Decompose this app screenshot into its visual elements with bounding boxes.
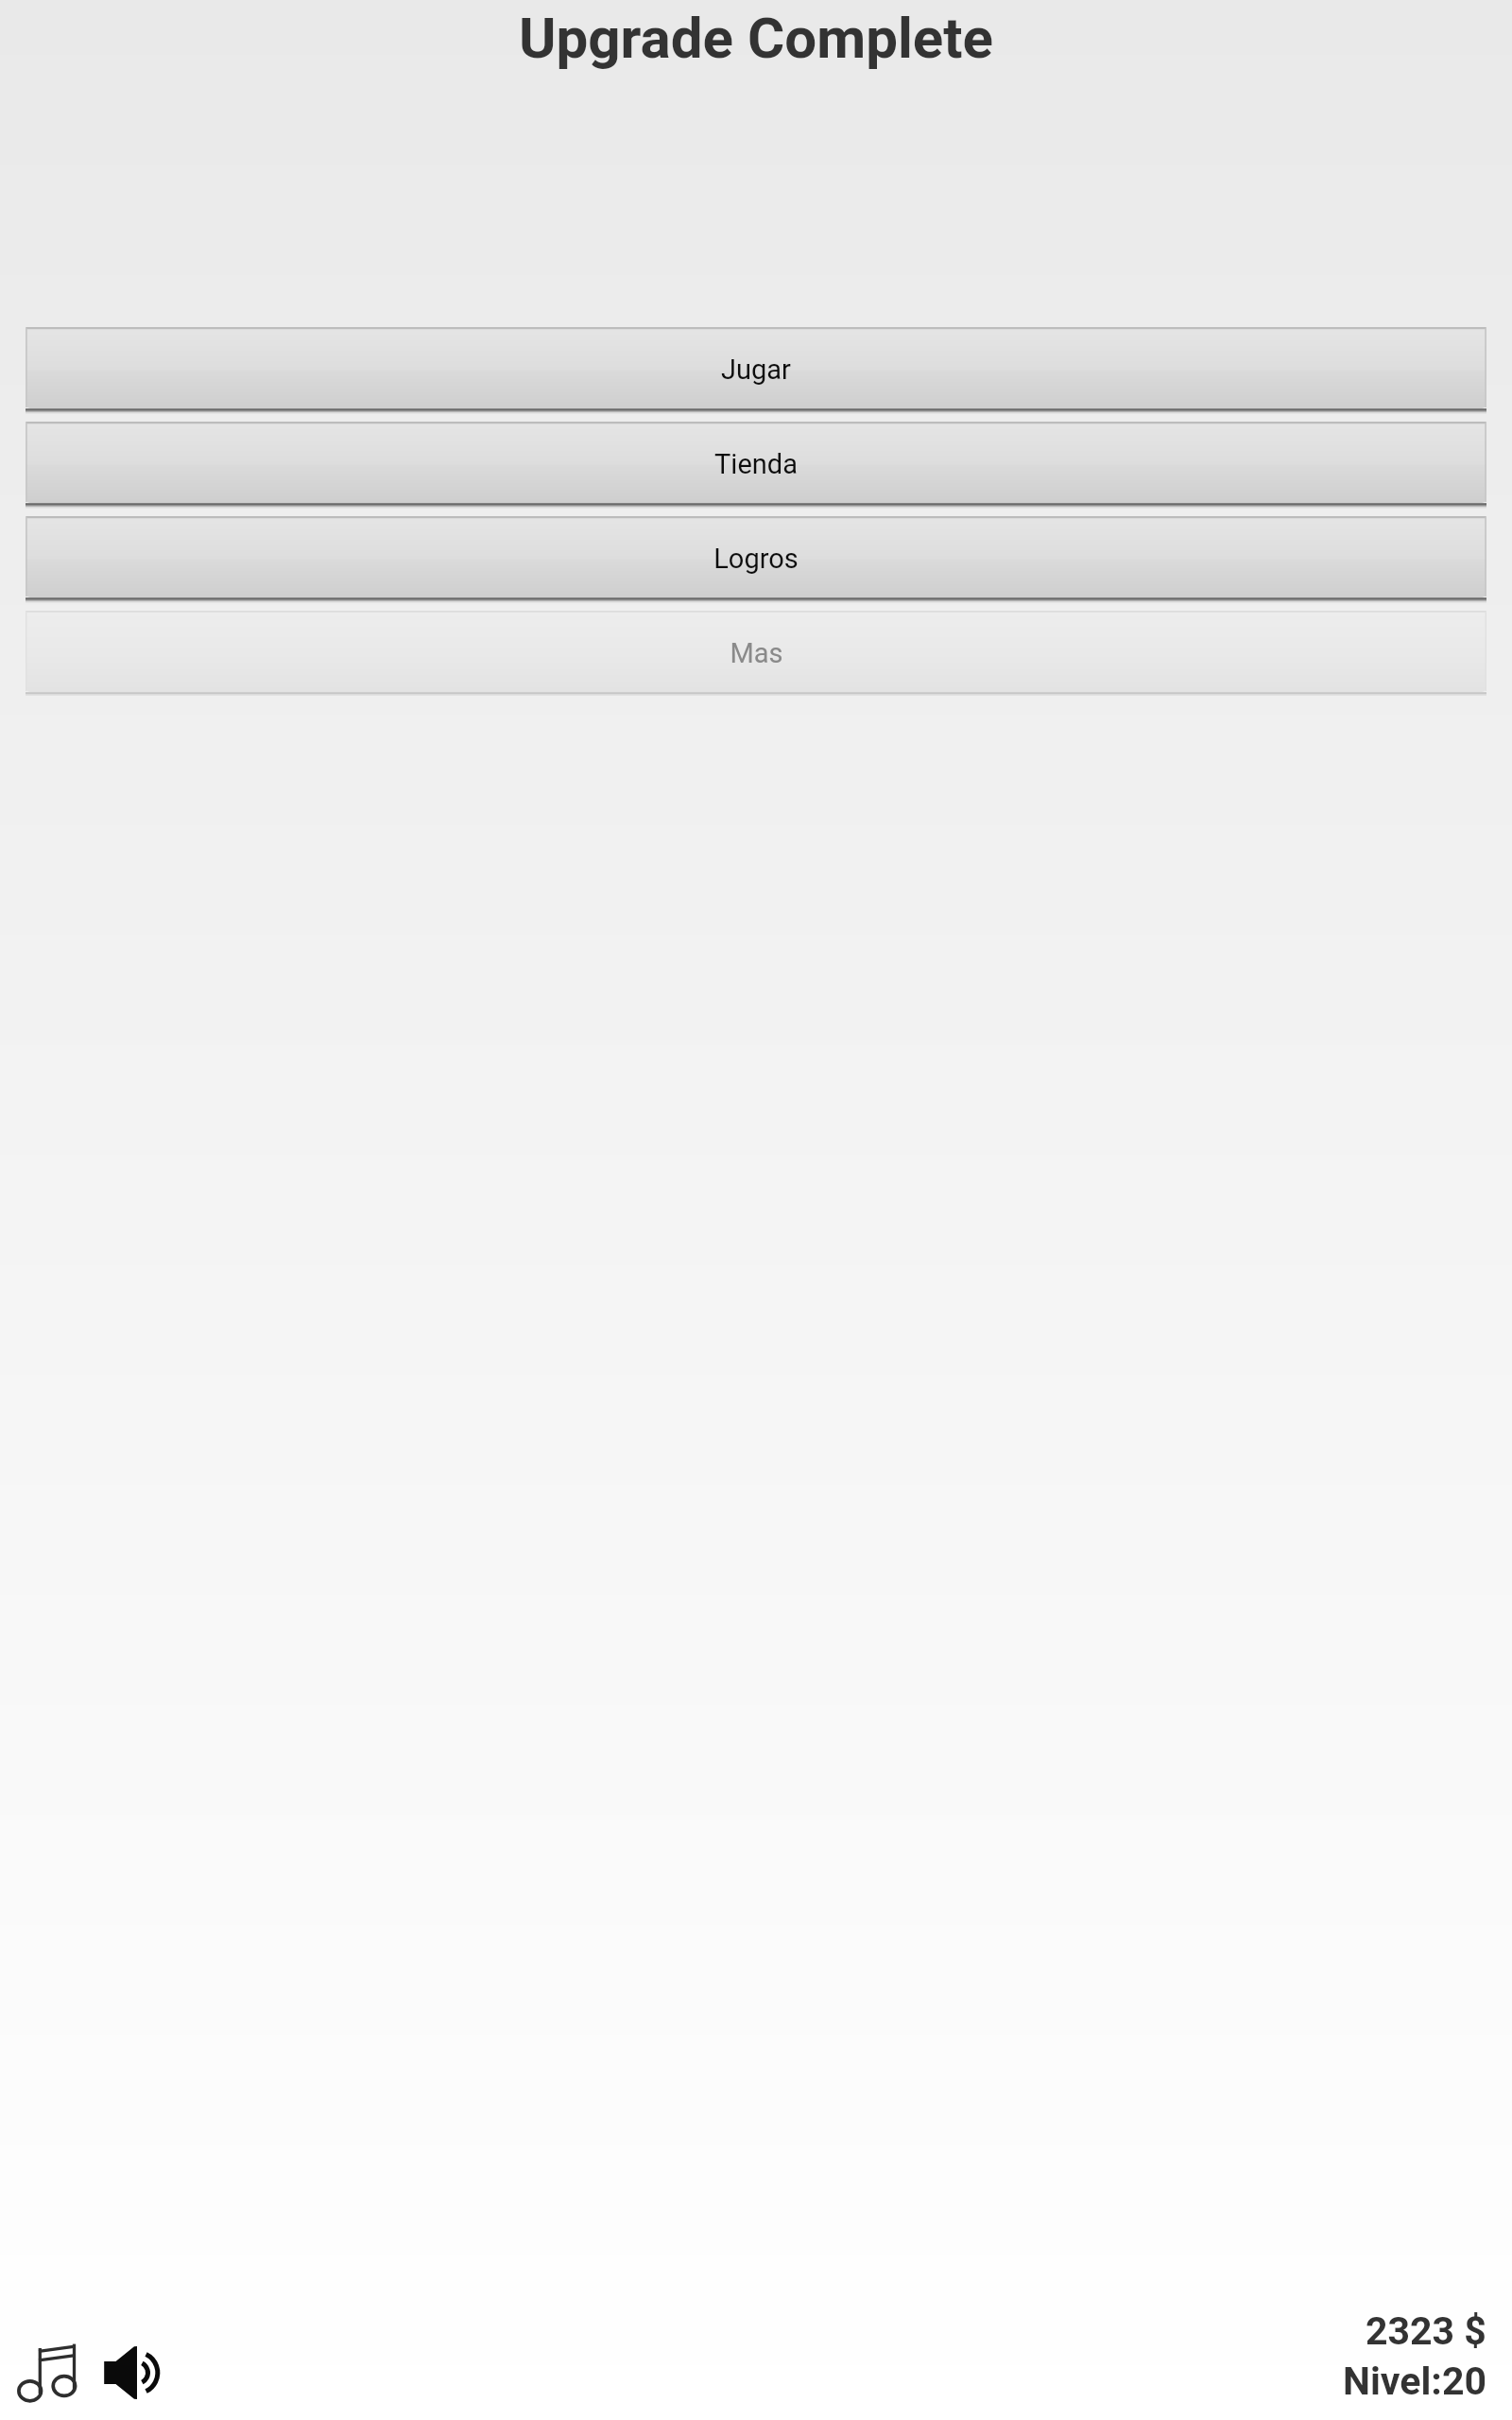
button[interactable]: Toggle sound	[102, 2342, 163, 2403]
staticText: Nivel:20	[1343, 2359, 1486, 2404]
button[interactable]: Tienda	[26, 422, 1486, 508]
button[interactable]: Toggle music	[17, 2342, 77, 2403]
staticText: Tienda	[714, 448, 798, 480]
button[interactable]: Logros	[26, 516, 1486, 602]
staticText: Jugar	[721, 354, 791, 386]
button[interactable]: Mas	[26, 611, 1486, 697]
staticText: Mas	[730, 637, 783, 669]
button[interactable]: Jugar	[26, 327, 1486, 413]
staticText: Upgrade Complete	[0, 5, 1512, 71]
staticText: Logros	[713, 543, 799, 575]
staticText: 2323 $	[1366, 2308, 1486, 2354]
